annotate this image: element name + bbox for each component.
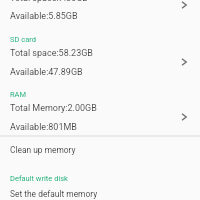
staticText: Available:801MB [10, 122, 77, 133]
button[interactable] [0, 82, 200, 135]
button[interactable]: Internal storage details [170, 0, 198, 19]
button[interactable] [0, 0, 200, 27]
staticText: Total space:7.85GB [10, 0, 88, 4]
button[interactable]: SD card details [170, 48, 198, 76]
staticText: Available:47.89GB [10, 67, 83, 78]
button[interactable] [0, 27, 200, 82]
staticText: Total Memory:2.00GB [10, 103, 97, 114]
button[interactable] [0, 141, 200, 165]
button[interactable]: RAM details [170, 103, 198, 131]
staticText: RAM [10, 90, 27, 99]
button[interactable] [0, 166, 200, 200]
staticText: SD card [10, 35, 36, 44]
staticText: Default write disk [10, 174, 68, 183]
staticText: Total space:58.23GB [10, 48, 93, 59]
staticText: Set the default memory [10, 189, 98, 199]
staticText: Clean up memory [10, 145, 76, 155]
staticText: Available:5.85GB [10, 11, 78, 22]
